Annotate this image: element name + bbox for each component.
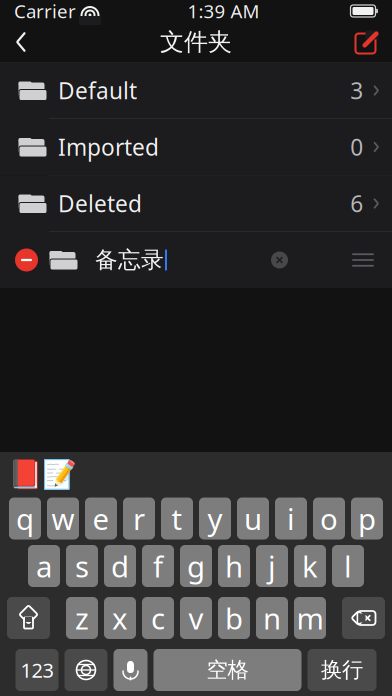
button[interactable]: Default (0, 62, 392, 119)
staticText: 📕 (7, 458, 42, 490)
button[interactable]: w (47, 497, 79, 539)
button[interactable]: Dictation (113, 649, 147, 691)
staticText: u (244, 499, 262, 538)
button[interactable]: s (66, 545, 98, 587)
staticText: q (16, 499, 34, 538)
button[interactable]: Switch keyboard (64, 649, 107, 691)
button[interactable]: c (142, 597, 174, 639)
staticText: b (225, 598, 243, 637)
button[interactable]: z (66, 597, 98, 639)
staticText: Deleted (58, 188, 142, 218)
button[interactable]: t (161, 497, 193, 539)
staticText: r (133, 499, 145, 538)
button[interactable]: n (256, 597, 288, 639)
button[interactable]: b (218, 597, 250, 639)
button[interactable]: h (218, 545, 250, 587)
button[interactable]: a (28, 545, 60, 587)
button[interactable]: m (294, 597, 326, 639)
staticText: p (358, 499, 376, 538)
staticText: g (187, 546, 205, 585)
button[interactable]: Clear text (265, 251, 294, 268)
staticText: f (153, 546, 163, 585)
button[interactable]: y (199, 497, 231, 539)
button[interactable]: 空格 (153, 649, 301, 691)
staticText: 换行 (321, 657, 363, 683)
button[interactable]: l (332, 545, 364, 587)
staticText: Imported (58, 132, 159, 162)
staticText: 文件夹 (160, 27, 232, 57)
staticText: 3 (350, 75, 363, 105)
button[interactable]: x (104, 597, 136, 639)
staticText: 6 (350, 188, 363, 218)
staticText: w (51, 499, 74, 538)
button[interactable]: Deleted (0, 175, 392, 232)
staticText: s (75, 546, 89, 585)
button[interactable]: i (275, 497, 307, 539)
button[interactable]: r (123, 497, 155, 539)
button[interactable]: Delete 备忘录 (0, 248, 47, 271)
staticText: i (287, 499, 295, 538)
button[interactable]: q (9, 497, 41, 539)
button[interactable]: Imported (0, 119, 392, 175)
staticText: a (36, 546, 52, 585)
button[interactable]: e (85, 497, 117, 539)
button[interactable]: f (142, 545, 174, 587)
staticText: 备忘录 (95, 246, 164, 274)
staticText: l (344, 546, 352, 585)
staticText: 空格 (206, 657, 248, 683)
staticText: k (302, 546, 318, 585)
staticText: o (320, 499, 338, 538)
button[interactable]: Memo emoji (42, 458, 76, 490)
staticText: e (92, 499, 109, 538)
staticText: d (111, 546, 129, 585)
staticText: Carrier (14, 0, 76, 23)
staticText: m (296, 598, 323, 637)
button[interactable]: 换行 (307, 649, 376, 691)
staticText: v (188, 598, 203, 637)
staticText: 📝 (41, 458, 76, 490)
staticText: y (207, 499, 222, 538)
staticText: z (75, 598, 89, 637)
staticText: 1:39 AM (187, 0, 259, 23)
staticText: 0 (350, 132, 363, 162)
button[interactable]: u (237, 497, 269, 539)
button[interactable]: Book emoji (8, 458, 42, 490)
staticText: x (112, 598, 128, 637)
button[interactable]: v (180, 597, 212, 639)
button[interactable]: Back (0, 20, 42, 64)
staticText: h (225, 546, 243, 585)
button[interactable]: p (351, 497, 383, 539)
button[interactable]: Delete (342, 597, 385, 639)
staticText: c (151, 598, 165, 637)
button[interactable]: g (180, 545, 212, 587)
button[interactable]: Shift (7, 597, 50, 639)
button[interactable]: Reorder (342, 253, 384, 267)
button[interactable]: New Folder (342, 21, 392, 63)
button[interactable]: d (104, 545, 136, 587)
staticText: 123 (20, 657, 53, 683)
staticText: j (268, 546, 276, 585)
button[interactable]: o (313, 497, 345, 539)
button[interactable]: j (256, 545, 288, 587)
staticText: t (171, 499, 182, 538)
staticText: Default (58, 75, 137, 105)
staticText: n (263, 598, 281, 637)
button[interactable]: k (294, 545, 326, 587)
button[interactable]: 123 (15, 649, 58, 691)
